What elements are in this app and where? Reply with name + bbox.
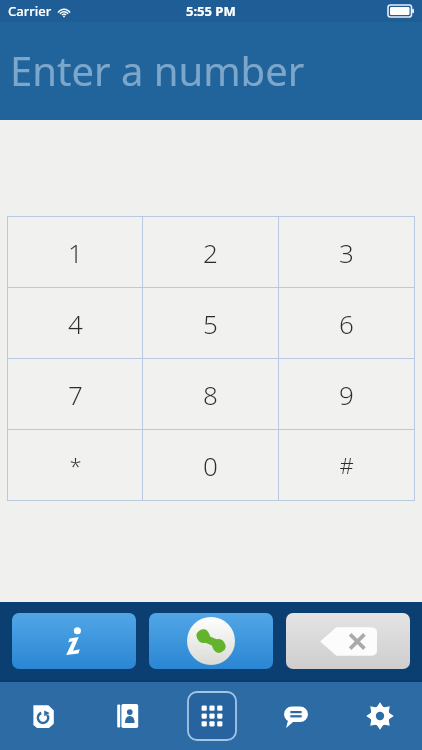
button[interactable]: 8 <box>143 359 278 429</box>
staticText: 0 <box>203 448 218 483</box>
staticText: Carrier <box>8 2 52 20</box>
button[interactable]: Messages <box>254 682 338 750</box>
staticText: 3 <box>339 235 354 270</box>
staticText: 5:55 PM <box>186 2 236 20</box>
button[interactable]: 5 <box>143 288 278 358</box>
button[interactable]: Info <box>12 613 136 669</box>
staticText: 9 <box>339 377 354 412</box>
button[interactable]: Enter a number <box>0 22 422 120</box>
button[interactable]: Contacts <box>85 682 170 750</box>
button[interactable]: 2 <box>143 217 278 287</box>
staticText: 7 <box>68 377 83 412</box>
button[interactable]: 4 <box>8 288 142 358</box>
button[interactable]: Keypad <box>170 682 254 750</box>
staticText: 6 <box>339 306 354 341</box>
button[interactable]: 9 <box>279 359 414 429</box>
staticText: 4 <box>68 306 83 341</box>
button[interactable]: * <box>8 430 142 500</box>
button[interactable]: Backspace <box>286 613 410 669</box>
button[interactable]: Settings <box>338 682 422 750</box>
button[interactable]: 6 <box>279 288 414 358</box>
button[interactable]: 1 <box>8 217 142 287</box>
staticText: * <box>69 450 82 480</box>
button[interactable]: 7 <box>8 359 142 429</box>
button[interactable]: 3 <box>279 217 414 287</box>
staticText: 5 <box>203 306 218 341</box>
staticText: Enter a number <box>10 43 305 97</box>
button[interactable]: Recents <box>0 682 85 750</box>
staticText: # <box>339 450 354 480</box>
staticText: 8 <box>203 377 218 412</box>
staticText: 2 <box>203 235 218 270</box>
button[interactable]: Call <box>149 613 273 669</box>
button[interactable]: 0 <box>143 430 278 500</box>
button[interactable]: # <box>279 430 414 500</box>
staticText: 1 <box>68 235 83 270</box>
